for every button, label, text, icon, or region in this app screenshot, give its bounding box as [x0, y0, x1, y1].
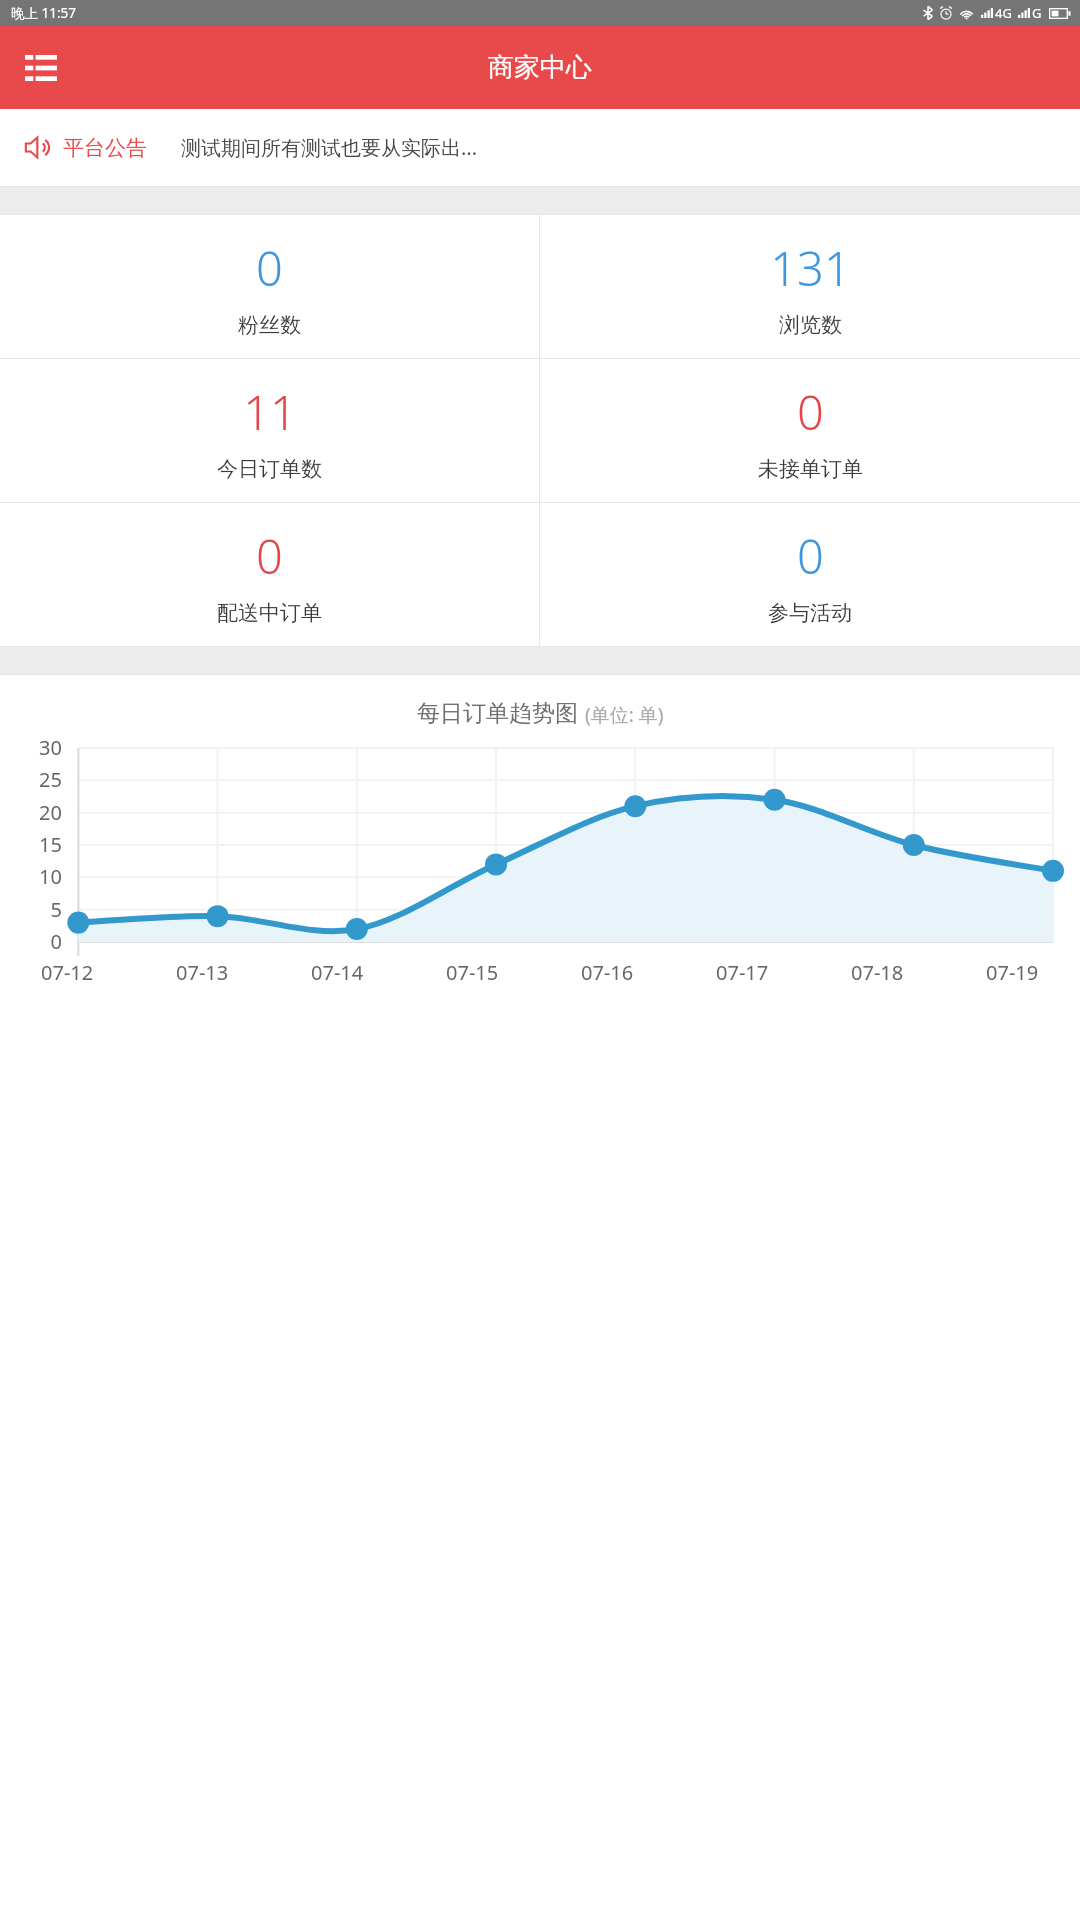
staticText: 07-15 [446, 959, 499, 986]
staticText: 07-18 [851, 959, 904, 986]
button[interactable]: 平台公告 [0, 109, 1080, 186]
staticText: (单位: 单) [585, 702, 664, 728]
staticText: 浏览数 [779, 312, 842, 338]
staticText: 07-19 [986, 959, 1039, 986]
staticText: 测试期间所有测试也要从实际出... [181, 134, 478, 161]
staticText: 粉丝数 [238, 312, 301, 338]
staticText: 每日订单趋势图 [417, 699, 578, 728]
staticText: 07-17 [716, 959, 769, 986]
staticText: 20 [0, 799, 62, 826]
staticText: 商家中心 [488, 51, 592, 84]
staticText: 07-16 [581, 959, 634, 986]
staticText: 15 [0, 831, 62, 858]
staticText: 0 [256, 236, 283, 300]
staticText: 30 [0, 734, 62, 761]
staticText: 未接单订单 [758, 456, 863, 482]
staticText: 今日订单数 [217, 456, 322, 482]
staticText: 5 [0, 896, 62, 923]
staticText: 0 [0, 928, 62, 955]
staticText: G [1032, 4, 1042, 22]
staticText: 晚上 11:57 [11, 4, 77, 22]
button[interactable]: 0 [540, 503, 1080, 646]
staticText: 配送中订单 [217, 600, 322, 626]
staticText: 10 [0, 863, 62, 890]
button[interactable]: 0 [0, 215, 539, 358]
button[interactable]: 11 [0, 359, 539, 502]
staticText: 131 [770, 236, 851, 300]
button[interactable]: 131 [540, 215, 1080, 358]
staticText: 4G [995, 4, 1012, 22]
staticText: 07-12 [41, 959, 94, 986]
button[interactable]: 菜单 [10, 37, 72, 99]
staticText: 11 [243, 380, 297, 444]
button[interactable]: 0 [540, 359, 1080, 502]
staticText: 0 [797, 380, 824, 444]
staticText: 0 [256, 524, 283, 588]
button[interactable]: 0 [0, 503, 539, 646]
staticText: 07-14 [311, 959, 364, 986]
staticText: 平台公告 [63, 135, 147, 161]
staticText: 0 [797, 524, 824, 588]
staticText: 参与活动 [768, 600, 852, 626]
staticText: 07-13 [176, 959, 229, 986]
staticText: 25 [0, 766, 62, 793]
